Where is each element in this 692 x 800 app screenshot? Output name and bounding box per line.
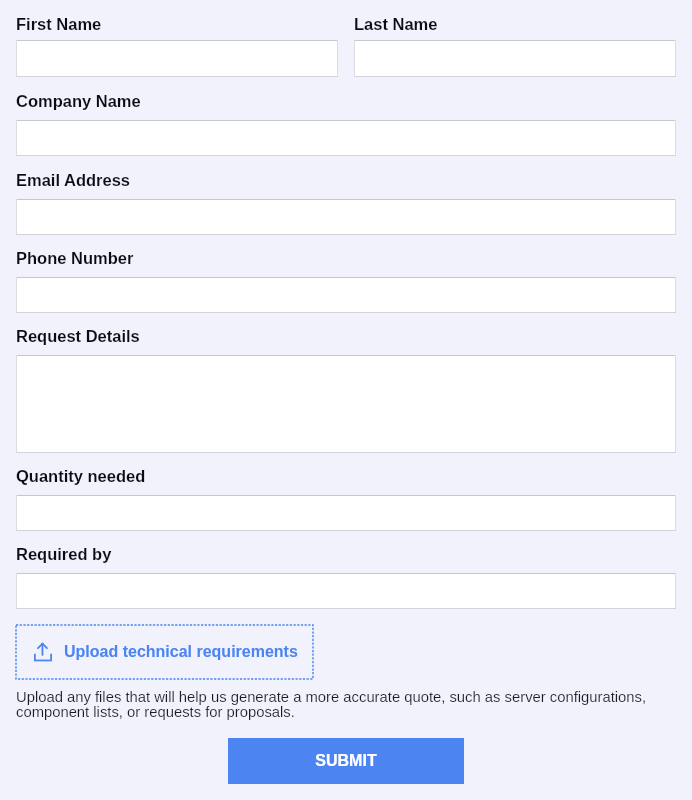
button[interactable]: Quantity needed [16,495,676,531]
staticText: First Name [16,15,102,33]
staticText: Upload technical requirements [64,643,298,661]
staticText: Request Details [16,327,140,345]
staticText: Phone Number [16,249,134,267]
button[interactable]: Request Details [16,355,676,453]
button[interactable]: Email Address [16,199,676,235]
staticText: Upload any files that will help us gener… [16,689,676,720]
staticText: SUBMIT [315,752,377,770]
button[interactable]: Required by [16,573,676,609]
button[interactable]: Company Name [16,120,676,156]
staticText: Quantity needed [16,467,146,485]
button[interactable]: Upload technical requirements [16,625,313,679]
staticText: Email Address [16,171,131,189]
button[interactable]: Phone Number [16,277,676,313]
button[interactable]: SUBMIT [228,738,464,784]
button[interactable]: First Name [16,40,338,77]
staticText: Required by [16,545,112,563]
button[interactable]: Last Name [354,40,676,77]
staticText: Last Name [354,15,438,33]
staticText: Company Name [16,92,141,110]
